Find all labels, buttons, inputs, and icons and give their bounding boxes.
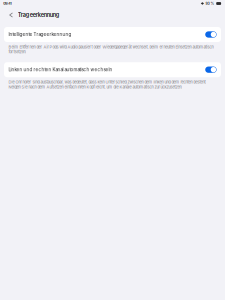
staticText: Intelligente Trageerkennung xyxy=(8,32,71,37)
staticText: Linken und rechten Kanal automatisch wec… xyxy=(8,67,112,72)
button[interactable]: Linken und rechten Kanal automatisch wec… xyxy=(4,62,221,77)
button[interactable]: Zurück xyxy=(7,10,14,20)
staticText: 93 % xyxy=(206,1,215,6)
staticText: Beim Entfernen der AirPods wird Audio pa… xyxy=(8,44,213,54)
staticText: Trageerkennung xyxy=(18,12,60,18)
button[interactable]: Intelligente Trageerkennung xyxy=(4,27,221,42)
staticText: 09:41 xyxy=(3,1,12,6)
staticText: Die Ohrhörer sind austauschbar, was bede… xyxy=(8,80,206,89)
